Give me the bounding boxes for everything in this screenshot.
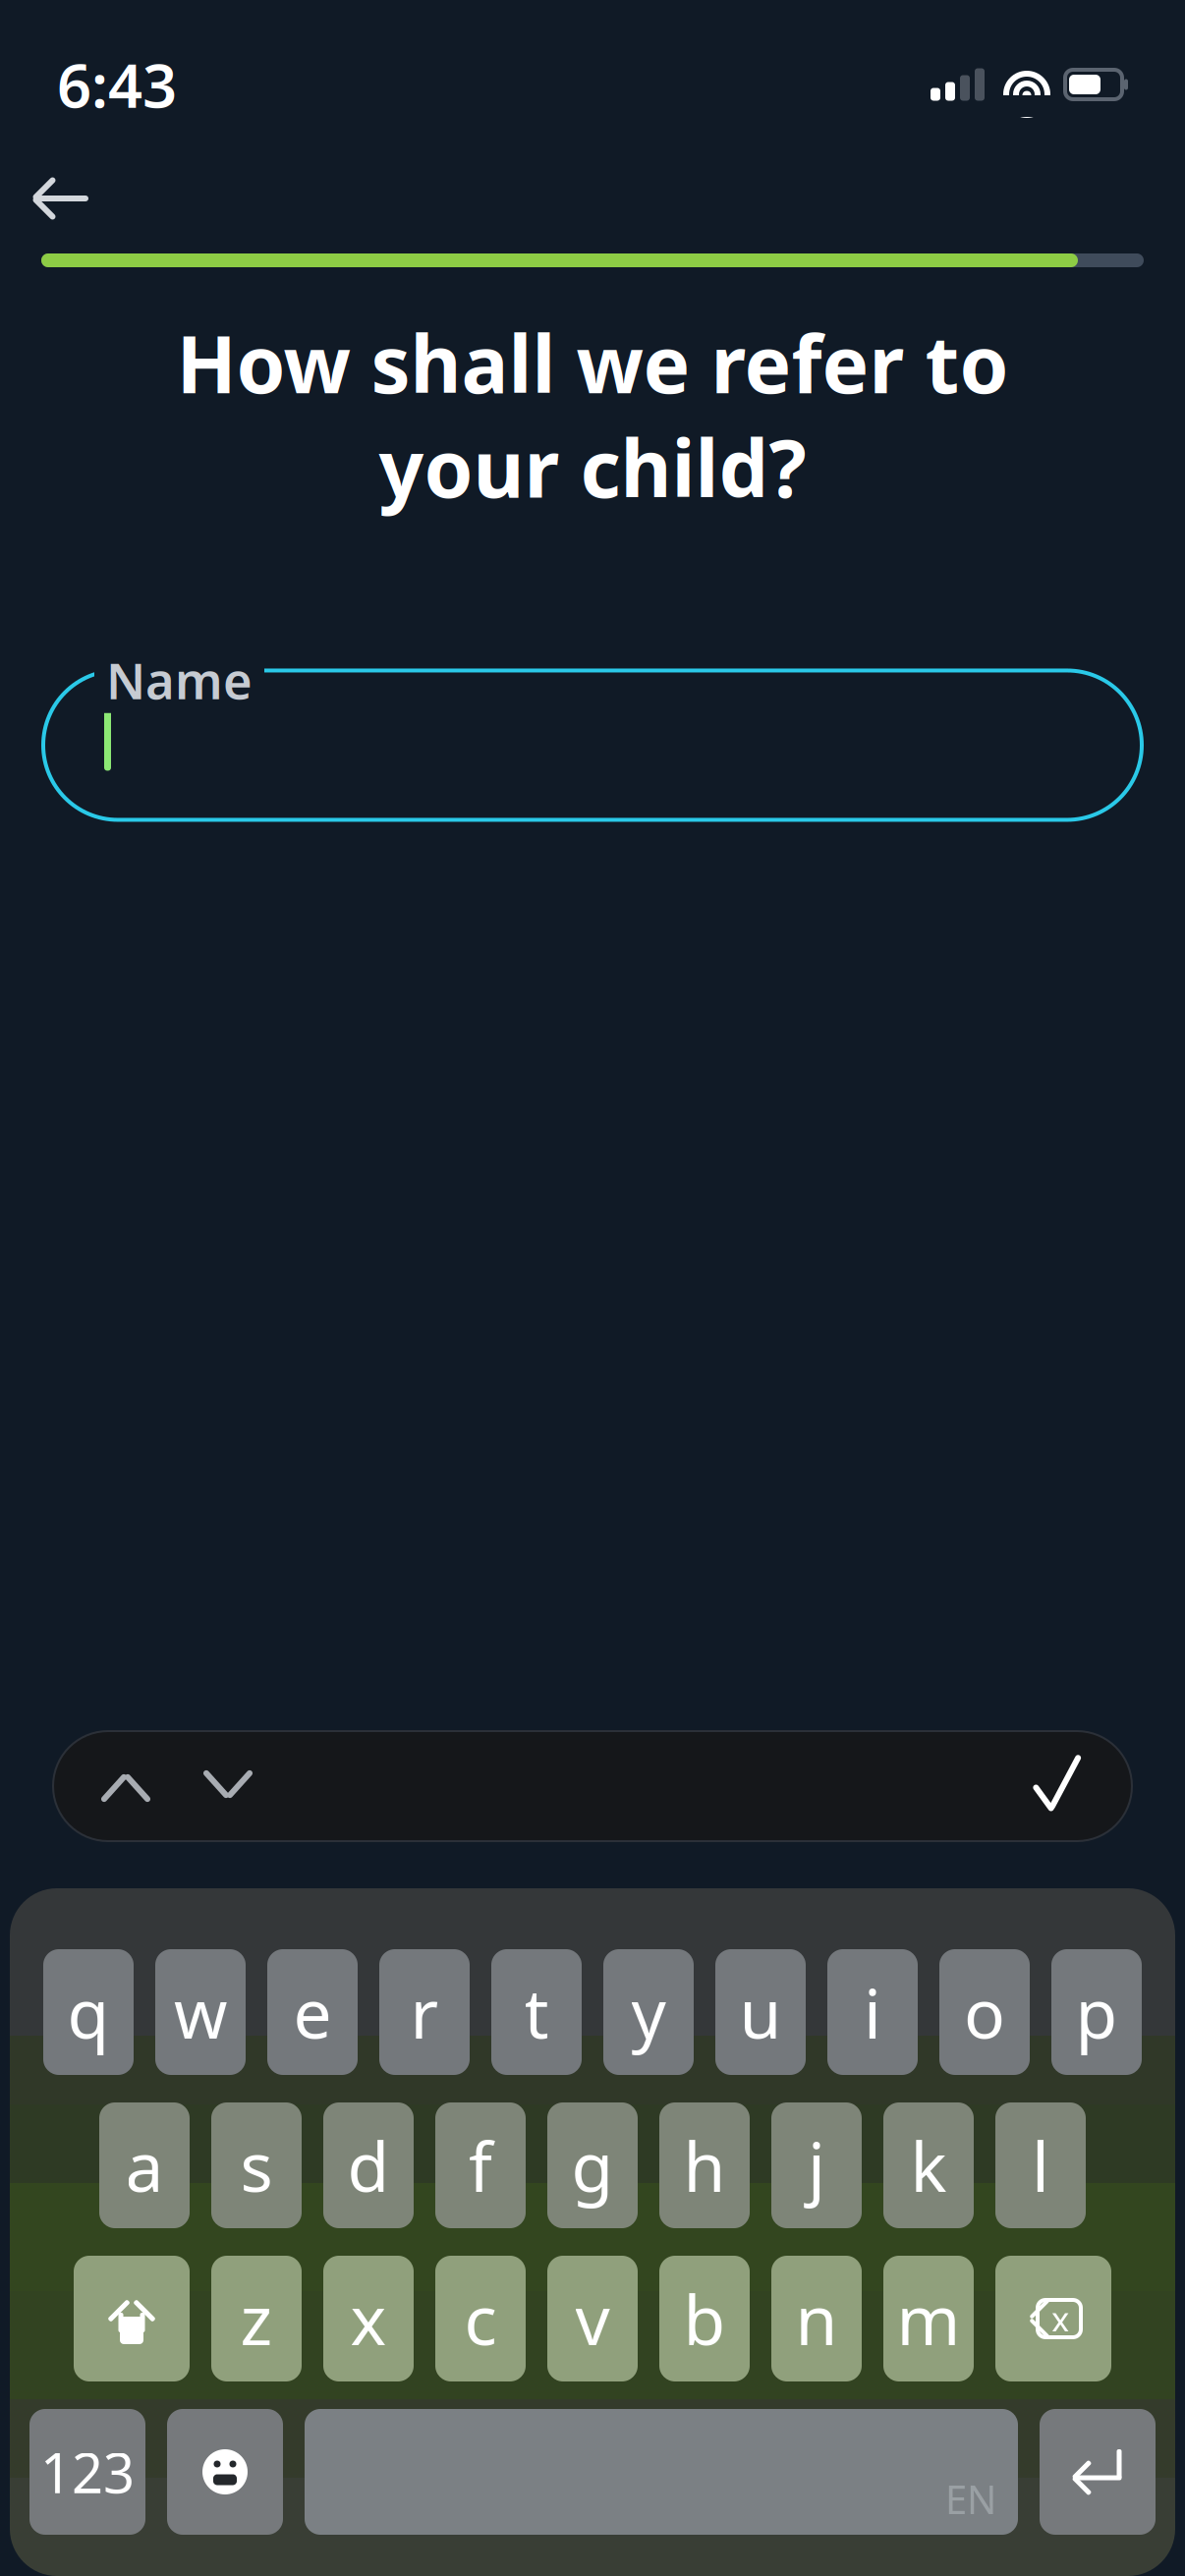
button[interactable]: m xyxy=(883,2256,974,2381)
button[interactable]: Delete xyxy=(995,2256,1111,2381)
staticText: your child? xyxy=(379,415,806,519)
staticText: How shall we refer to xyxy=(176,310,1009,415)
staticText: 6:43 xyxy=(57,45,177,124)
button[interactable]: l xyxy=(995,2102,1086,2228)
staticText: k xyxy=(910,2120,947,2211)
button[interactable]: k xyxy=(883,2102,974,2228)
staticText: e xyxy=(293,1967,332,2057)
staticText: d xyxy=(347,2120,390,2211)
staticText: Name xyxy=(106,647,253,713)
staticText: l xyxy=(1032,2120,1049,2211)
staticText: b xyxy=(683,2273,726,2364)
staticText: c xyxy=(464,2273,497,2364)
staticText: y xyxy=(631,1967,666,2057)
button[interactable]: a xyxy=(99,2102,190,2228)
staticText: m xyxy=(897,2273,960,2364)
button[interactable]: Shift xyxy=(74,2256,190,2381)
staticText: p xyxy=(1075,1967,1118,2057)
button[interactable]: Previous field xyxy=(75,1735,177,1837)
staticText: w xyxy=(174,1967,227,2057)
button[interactable]: c xyxy=(435,2256,526,2381)
staticText: EN xyxy=(945,2473,996,2525)
staticText: v xyxy=(575,2273,610,2364)
button[interactable]: f xyxy=(435,2102,526,2228)
staticText: q xyxy=(67,1967,110,2057)
button[interactable]: q xyxy=(43,1949,134,2075)
staticText: 123 xyxy=(40,2435,135,2508)
button[interactable]: b xyxy=(659,2256,750,2381)
button[interactable]: u xyxy=(715,1949,806,2075)
button[interactable]: 123 xyxy=(29,2409,145,2535)
button[interactable]: t xyxy=(491,1949,582,2075)
staticText: r xyxy=(410,1967,439,2057)
staticText: u xyxy=(739,1967,782,2057)
staticText: t xyxy=(524,1967,549,2057)
button[interactable]: Space xyxy=(305,2409,1018,2535)
button[interactable]: s xyxy=(211,2102,302,2228)
button[interactable]: e xyxy=(267,1949,358,2075)
staticText: x xyxy=(1051,2296,1069,2341)
button[interactable]: w xyxy=(155,1949,246,2075)
staticText: n xyxy=(795,2273,838,2364)
button[interactable]: o xyxy=(939,1949,1030,2075)
button[interactable]: Return xyxy=(1040,2409,1156,2535)
staticText: s xyxy=(240,2120,273,2211)
staticText: h xyxy=(683,2120,726,2211)
staticText: x xyxy=(350,2273,387,2364)
button[interactable]: g xyxy=(547,2102,638,2228)
button[interactable]: n xyxy=(771,2256,862,2381)
staticText: z xyxy=(240,2273,273,2364)
button[interactable]: j xyxy=(771,2102,862,2228)
button[interactable]: Emoji xyxy=(167,2409,283,2535)
button[interactable]: x xyxy=(323,2256,414,2381)
button[interactable]: d xyxy=(323,2102,414,2228)
staticText: g xyxy=(571,2120,614,2211)
button[interactable]: p xyxy=(1051,1949,1142,2075)
staticText: i xyxy=(864,1967,881,2057)
button[interactable]: Back xyxy=(22,157,104,240)
staticText: j xyxy=(808,2120,825,2211)
button[interactable]: Next field xyxy=(177,1735,279,1837)
button[interactable]: z xyxy=(211,2256,302,2381)
button[interactable]: h xyxy=(659,2102,750,2228)
button[interactable]: v xyxy=(547,2256,638,2381)
button[interactable]: r xyxy=(379,1949,470,2075)
button[interactable]: i xyxy=(827,1949,918,2075)
button[interactable]: Done xyxy=(1008,1735,1110,1837)
staticText: f xyxy=(469,2120,492,2211)
button[interactable]: y xyxy=(603,1949,694,2075)
staticText: a xyxy=(125,2120,164,2211)
staticText: o xyxy=(964,1967,1005,2057)
